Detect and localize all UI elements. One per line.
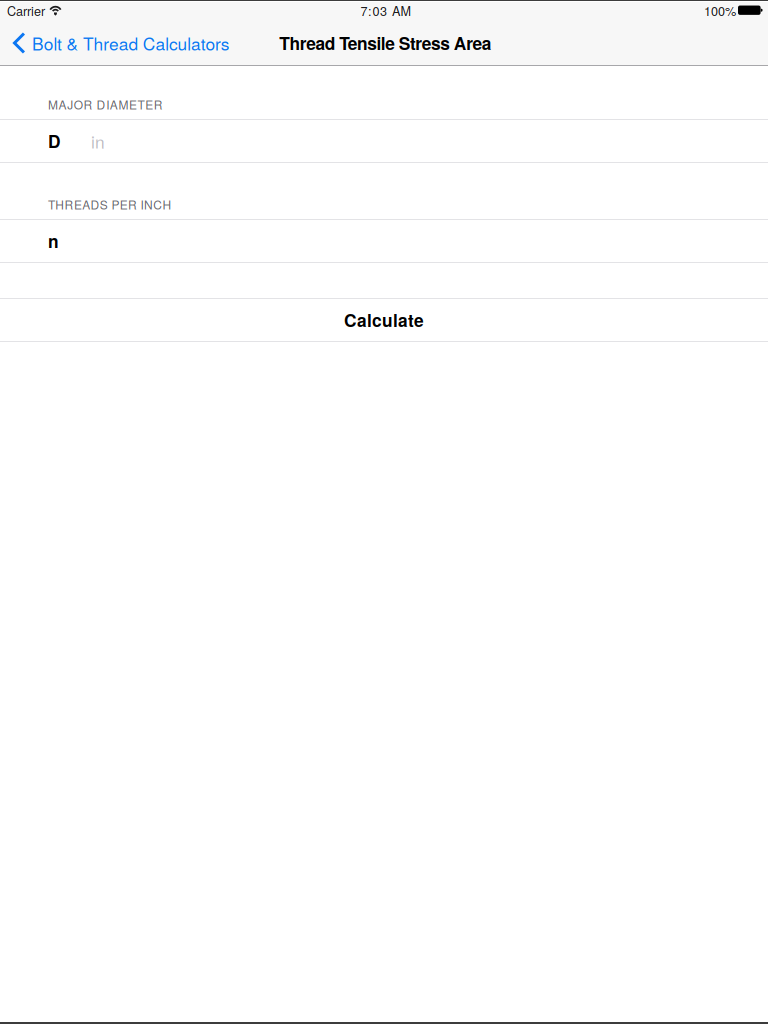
staticText: Thread Tensile Stress Area	[279, 31, 492, 55]
staticText: in	[91, 129, 105, 153]
staticText: THREADS PER INCH	[48, 196, 171, 213]
staticText: n	[48, 229, 59, 253]
button[interactable]: Bolt & Thread Calculators	[0, 21, 238, 65]
staticText: Calculate	[344, 308, 424, 332]
staticText: 100%	[704, 1, 736, 19]
staticText: Bolt & Thread Calculators	[32, 31, 230, 55]
staticText: Carrier	[7, 1, 45, 19]
button[interactable]: D	[0, 120, 768, 162]
staticText: 7:03 AM	[360, 1, 411, 19]
button[interactable]: n	[0, 220, 768, 262]
staticText: D	[48, 129, 61, 153]
staticText: MAJOR DIAMETER	[48, 96, 163, 113]
button[interactable]: Calculate	[0, 299, 768, 341]
